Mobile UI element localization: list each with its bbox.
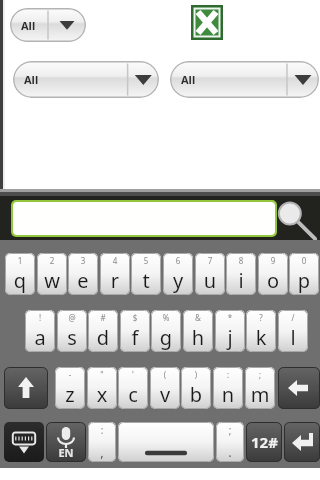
staticText: % [151,312,181,323]
staticText: 4 [100,255,130,266]
staticText: x [87,381,117,408]
staticText: o [258,267,288,294]
button[interactable]: / [278,310,308,352]
staticText: All [24,72,39,87]
button[interactable]: Enter [284,422,320,462]
button[interactable]: : [88,422,116,462]
button[interactable]: ( [150,367,180,409]
button[interactable]: Export to Excel [191,5,223,40]
staticText: g [151,324,181,351]
staticText: " [87,369,117,380]
staticText: l [278,324,308,351]
staticText: 7 [195,255,225,266]
staticText: : [88,423,116,437]
button[interactable]: * [215,310,245,352]
button[interactable]: : [213,367,243,409]
staticText: 3 [68,255,98,266]
button[interactable]: 3 [68,253,98,295]
staticText: d [88,324,118,351]
staticText: i [226,267,256,294]
button[interactable]: ; [216,422,244,462]
staticText: ( [150,369,180,380]
staticText: $ [120,312,150,323]
staticText: t [131,267,161,294]
button[interactable]: % [151,310,181,352]
staticText: All [21,18,36,33]
button[interactable]: # [88,310,118,352]
staticText: e [68,267,98,294]
staticText: k [246,324,276,351]
staticText: 2 [37,255,67,266]
staticText: - [55,369,85,380]
staticText: 1 [5,255,35,266]
button[interactable]: & [183,310,213,352]
button[interactable]: Voice input [46,422,86,462]
button[interactable]: $ [120,310,150,352]
staticText: All [181,72,196,87]
staticText: f [120,324,150,351]
button[interactable]: ; [245,367,275,409]
staticText: @ [57,312,87,323]
button[interactable]: 8 [226,253,256,295]
staticText: & [183,312,213,323]
staticText: / [278,312,308,323]
staticText: . [216,443,244,461]
staticText: ' [118,369,148,380]
staticText: r [100,267,130,294]
button[interactable]: - [55,367,85,409]
staticText: z [55,381,85,408]
button[interactable]: Switch keyboard [4,422,44,462]
staticText: EN [46,445,86,460]
staticText: p [289,267,319,294]
button[interactable]: Shift [4,367,48,409]
button[interactable]: Search [274,196,318,240]
button[interactable]: 0 [289,253,319,295]
button[interactable]: Backspace [278,367,320,409]
button[interactable]: All [170,61,319,98]
button[interactable]: All [10,8,86,42]
button[interactable]: Space [118,422,214,462]
button[interactable]: 12# [246,422,282,462]
staticText: a [25,324,55,351]
staticText: ? [246,312,276,323]
staticText: * [215,312,245,323]
staticText: b [181,381,211,408]
staticText: s [57,324,87,351]
button[interactable]: 6 [163,253,193,295]
button[interactable]: 2 [37,253,67,295]
button[interactable]: " [87,367,117,409]
staticText: 6 [163,255,193,266]
staticText: ; [245,369,275,380]
button[interactable]: ) [181,367,211,409]
staticText: w [37,267,67,294]
staticText: ; [216,423,244,437]
staticText: h [183,324,213,351]
button[interactable]: All [13,61,159,98]
staticText: y [163,267,193,294]
staticText: 5 [131,255,161,266]
staticText: c [118,381,148,408]
staticText: : [213,369,243,380]
button[interactable]: 7 [195,253,225,295]
button[interactable]: Search field [11,200,277,237]
button[interactable]: ! [25,310,55,352]
button[interactable]: 5 [131,253,161,295]
button[interactable]: ? [246,310,276,352]
staticText: m [245,381,275,408]
staticText: v [150,381,180,408]
button[interactable]: 9 [258,253,288,295]
staticText: 8 [226,255,256,266]
staticText: n [213,381,243,408]
staticText: u [195,267,225,294]
staticText: ) [181,369,211,380]
button[interactable]: ' [118,367,148,409]
staticText: 9 [258,255,288,266]
button[interactable]: 4 [100,253,130,295]
button[interactable]: @ [57,310,87,352]
button[interactable]: 1 [5,253,35,295]
staticText: j [215,324,245,351]
staticText: , [88,443,116,461]
staticText: 0 [289,255,319,266]
staticText: 12# [251,432,278,452]
staticText: q [5,267,35,294]
